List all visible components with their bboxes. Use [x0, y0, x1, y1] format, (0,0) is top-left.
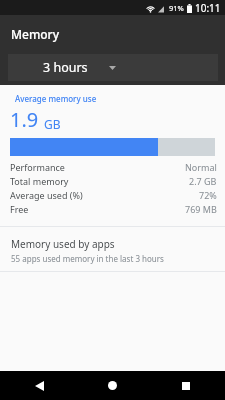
staticText: GB [44, 116, 61, 132]
staticText: Total memory [10, 175, 69, 187]
button[interactable]: Memory used by apps [0, 227, 225, 272]
staticText: Memory used by apps [11, 237, 115, 251]
staticText: 91% [169, 3, 184, 13]
button[interactable]: Recent apps [150, 371, 225, 400]
button[interactable]: 3 hours [8, 54, 218, 81]
staticText: 1.9 [10, 106, 39, 133]
button[interactable]: Back [0, 371, 75, 400]
staticText: Normal [185, 161, 217, 173]
staticText: Free [10, 203, 29, 215]
staticText: 10:11 [195, 1, 221, 15]
staticText: Average memory use [15, 93, 97, 104]
staticText: 769 MB [185, 203, 217, 215]
button[interactable]: Home [75, 371, 150, 400]
staticText: Average used (%) [10, 189, 83, 201]
button[interactable]: Memory [11, 26, 60, 42]
staticText: Performance [10, 161, 65, 173]
staticText: 2.7 GB [189, 175, 217, 187]
staticText: 3 hours [43, 59, 88, 76]
staticText: 55 apps used memory in the last 3 hours [11, 253, 164, 264]
staticText: 72% [199, 189, 217, 201]
